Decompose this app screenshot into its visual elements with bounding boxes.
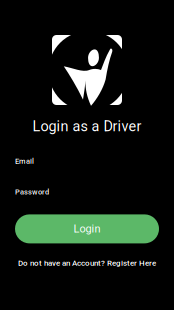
- staticText: Email: [15, 157, 34, 166]
- staticText: Login as a Driver: [32, 118, 141, 135]
- staticText: Do not have an Account? Register Here: [18, 258, 156, 268]
- staticText: Password: [15, 188, 49, 196]
- button[interactable]: Do not have an Account? Register Here: [0, 258, 174, 268]
- button[interactable]: Login: [15, 214, 159, 243]
- staticText: Login: [73, 222, 100, 235]
